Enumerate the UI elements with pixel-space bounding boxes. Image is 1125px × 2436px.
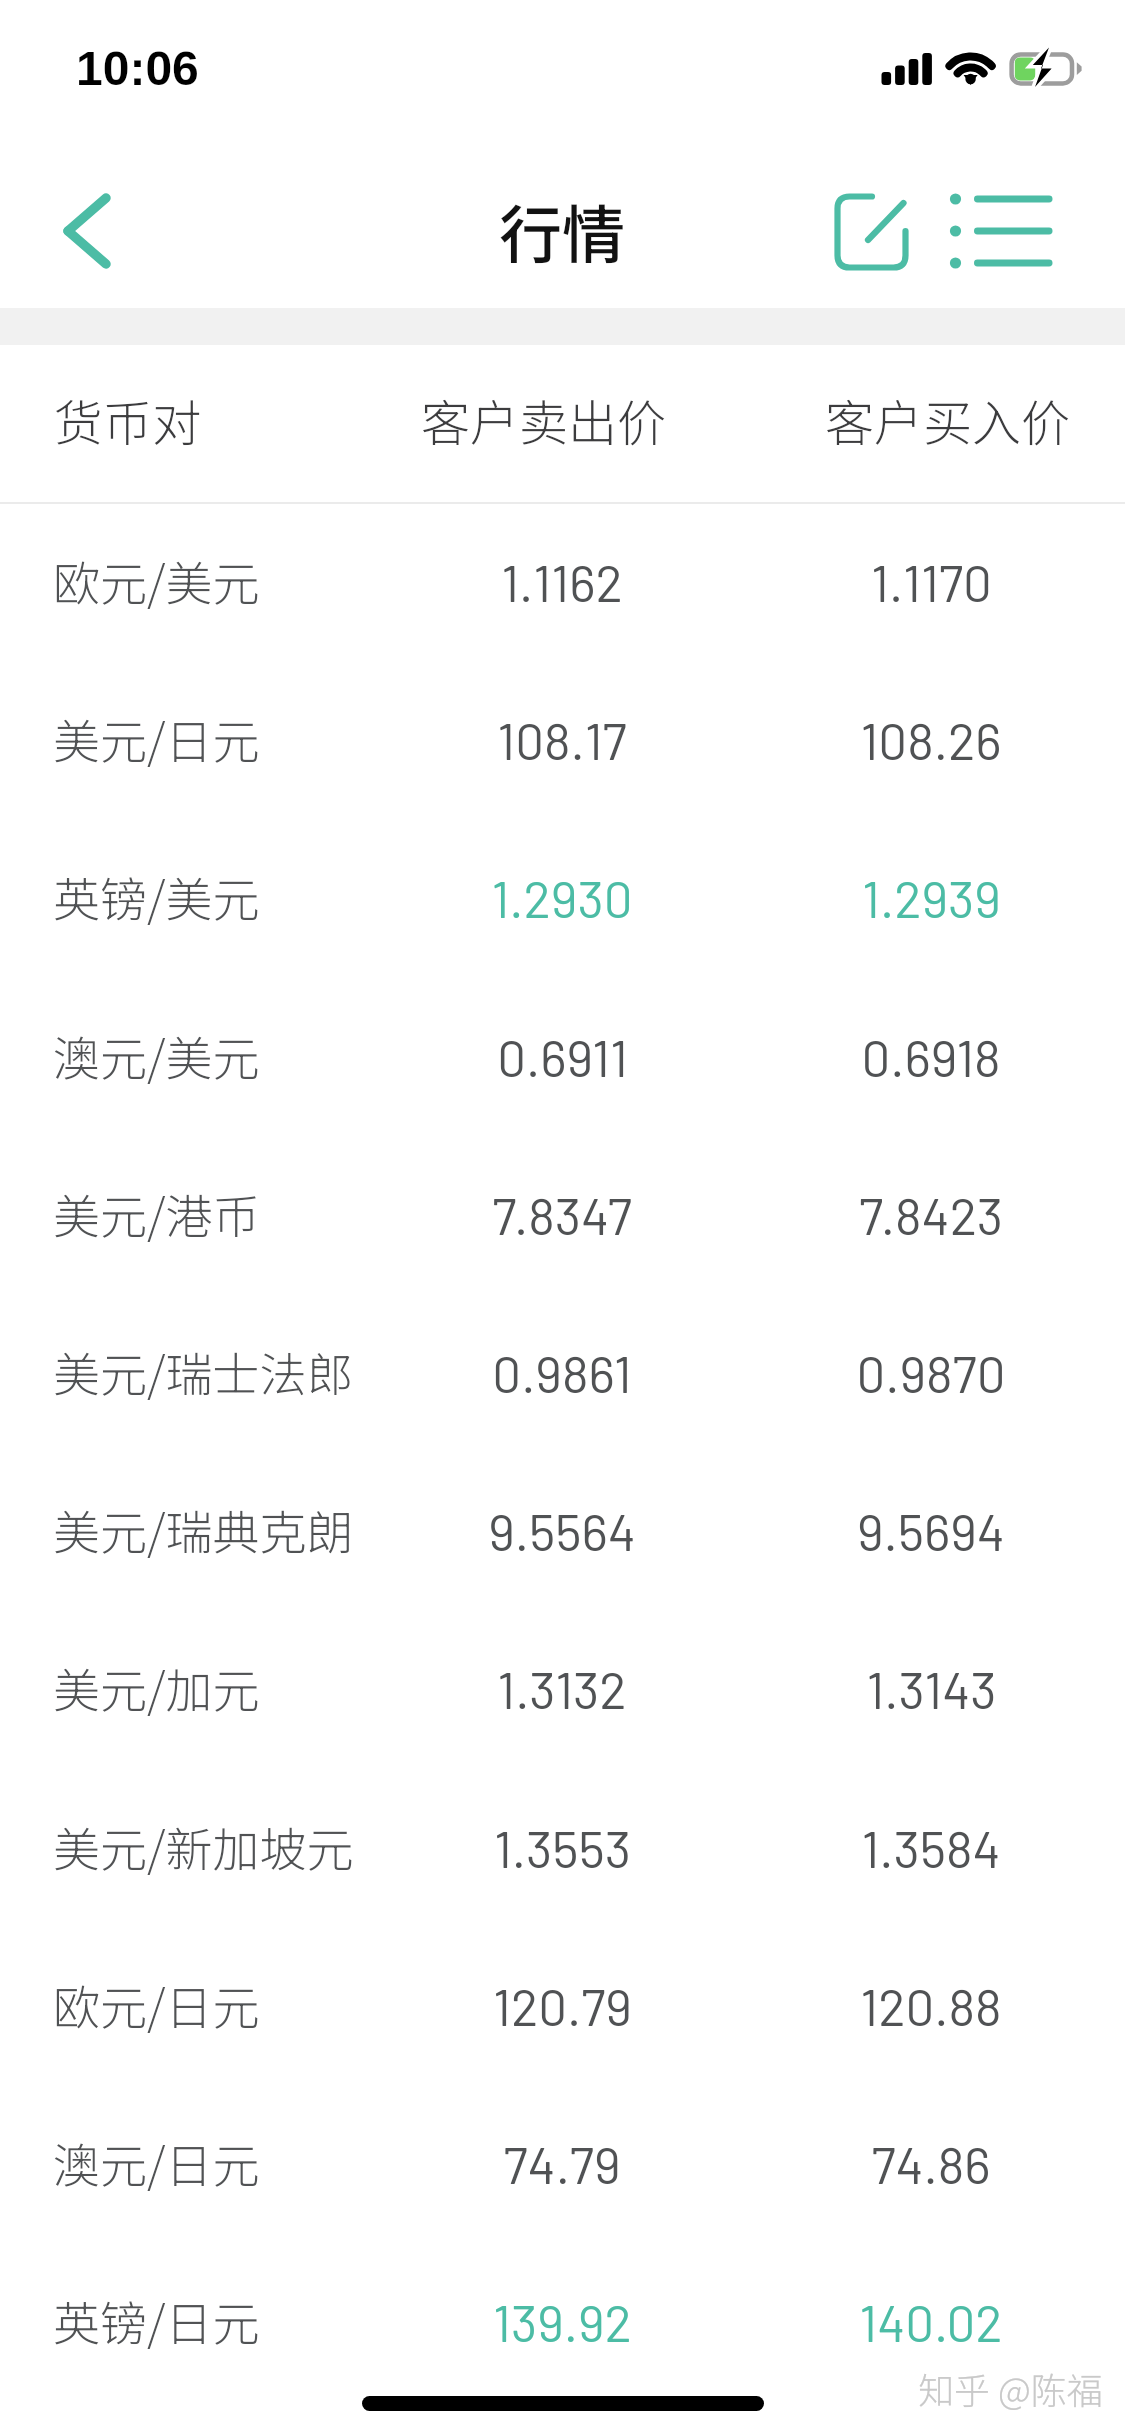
staticText: 1.3584 <box>861 1817 1001 1878</box>
staticText: 客户卖出价 <box>421 384 667 455</box>
button[interactable]: Back <box>20 160 160 300</box>
staticText: 7.8423 <box>859 1184 1003 1245</box>
staticText: 美元/瑞典克朗 <box>53 1495 354 1563</box>
staticText: 74.79 <box>503 2133 621 2194</box>
staticText: 美元/日元 <box>53 704 260 772</box>
staticText: 1.1162 <box>501 551 623 612</box>
button[interactable]: List <box>925 161 1085 301</box>
staticText: 9.5564 <box>488 1500 636 1561</box>
staticText: 1.2930 <box>491 867 633 928</box>
staticText: 1.3143 <box>866 1658 997 1719</box>
staticText: 1.3553 <box>494 1817 631 1878</box>
staticText: 欧元/日元 <box>53 1970 260 2038</box>
staticText: 7.8347 <box>492 1184 632 1245</box>
staticText: 0.9861 <box>492 1342 632 1403</box>
button[interactable]: 美元/瑞士法郎 <box>0 1295 1125 1453</box>
staticText: 10:06 <box>76 42 199 96</box>
staticText: 客户买入价 <box>825 384 1071 455</box>
staticText: 74.86 <box>871 2133 991 2194</box>
staticText: 美元/加元 <box>53 1653 260 1721</box>
staticText: 140.02 <box>859 2291 1003 2352</box>
button[interactable]: 美元/加元 <box>0 1611 1125 1769</box>
staticText: 1.1170 <box>871 551 992 612</box>
staticText: 货币对 <box>54 384 202 455</box>
staticText: 美元/瑞士法郎 <box>53 1337 354 1405</box>
button[interactable]: 英镑/日元 <box>0 2244 1125 2402</box>
staticText: 1.3132 <box>497 1658 627 1719</box>
button[interactable]: 欧元/日元 <box>0 1928 1125 2086</box>
staticText: 澳元/美元 <box>53 1021 260 1089</box>
staticText: 139.92 <box>493 2291 632 2352</box>
staticText: 1.2939 <box>862 867 1001 928</box>
button[interactable]: 欧元/美元 <box>0 504 1125 662</box>
staticText: 澳元/日元 <box>53 2128 260 2196</box>
staticText: 行情 <box>499 185 625 276</box>
staticText: 英镑/美元 <box>53 862 260 930</box>
button[interactable]: 英镑/美元 <box>0 820 1125 978</box>
button[interactable]: 美元/港币 <box>0 1137 1125 1295</box>
button[interactable]: 美元/瑞典克朗 <box>0 1453 1125 1611</box>
staticText: 0.6918 <box>861 1026 1001 1087</box>
staticText: 120.88 <box>860 1975 1002 2036</box>
staticText: 108.17 <box>497 709 627 770</box>
staticText: 120.79 <box>493 1975 632 2036</box>
button[interactable]: 澳元/美元 <box>0 979 1125 1137</box>
staticText: 欧元/美元 <box>53 546 260 614</box>
staticText: 美元/港币 <box>53 1179 260 1247</box>
button[interactable]: 美元/日元 <box>0 662 1125 820</box>
button[interactable]: 澳元/日元 <box>0 2086 1125 2244</box>
staticText: 0.6911 <box>497 1026 628 1087</box>
button[interactable]: Edit <box>804 161 944 301</box>
button[interactable]: 美元/新加坡元 <box>0 1770 1125 1928</box>
staticText: 美元/新加坡元 <box>53 1812 354 1880</box>
staticText: 英镑/日元 <box>53 2286 260 2354</box>
staticText: 108.26 <box>860 709 1002 770</box>
staticText: 知乎 @陈福 <box>918 2362 1103 2414</box>
staticText: 9.5694 <box>857 1500 1005 1561</box>
staticText: 0.9870 <box>856 1342 1006 1403</box>
